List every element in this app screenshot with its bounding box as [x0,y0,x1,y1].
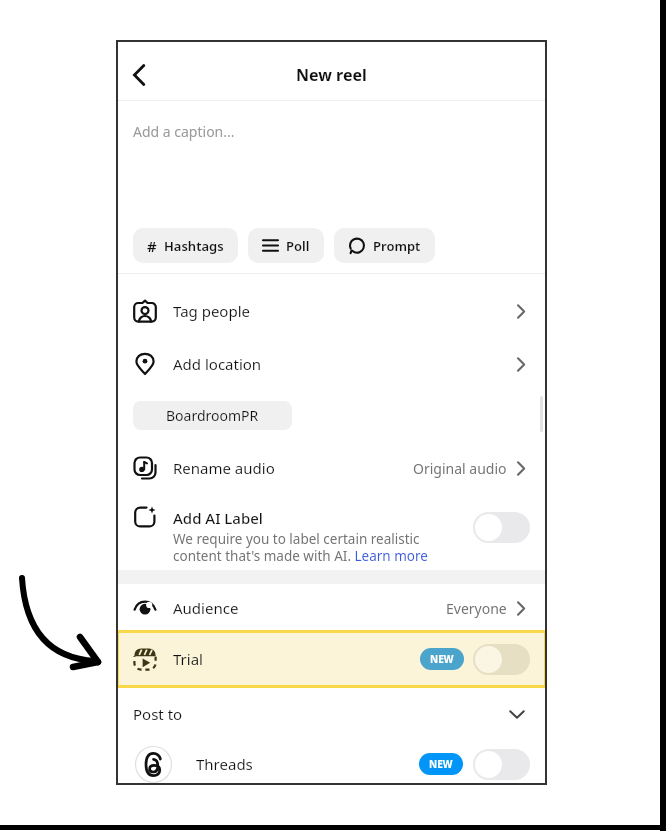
staticText: Add location [173,354,262,374]
staticText: Post to [133,704,183,724]
staticText: Poll [286,237,310,255]
staticText: Tag people [173,301,250,321]
button[interactable] [473,512,530,543]
button[interactable]: Trial [116,630,547,688]
staticText: # [147,236,157,256]
button[interactable] [133,64,153,86]
staticText: Rename audio [173,458,275,478]
button[interactable] [473,749,530,780]
button[interactable]: # [133,228,238,263]
button[interactable]: Audience [116,582,547,634]
staticText: Original audio [413,459,507,478]
staticText: Audience [173,598,239,618]
staticText: New reel [296,64,367,86]
button[interactable]: Threads [116,738,547,790]
button[interactable]: Add AI Label [116,500,547,566]
button[interactable]: Prompt [334,228,435,263]
button[interactable]: Tag people [116,285,547,337]
button[interactable]: Poll [248,228,324,263]
staticText: BoardroomPR [166,406,259,425]
staticText: Add AI Label [173,508,263,528]
button[interactable]: BoardroomPR [133,401,292,430]
staticText: Hashtags [164,237,224,255]
staticText: Everyone [446,599,507,618]
staticText: Threads [196,754,253,774]
staticText: NEW [430,652,454,666]
button[interactable]: Rename audio [116,442,547,494]
button[interactable] [473,644,530,675]
staticText: Prompt [373,237,421,255]
button[interactable]: Post to [116,688,547,740]
button[interactable]: Add location [116,338,547,390]
staticText: NEW [429,757,453,771]
staticText: Add a caption... [133,122,235,141]
staticText: Trial [173,649,203,669]
staticText: We require you to label certain realisti… [173,530,428,565]
